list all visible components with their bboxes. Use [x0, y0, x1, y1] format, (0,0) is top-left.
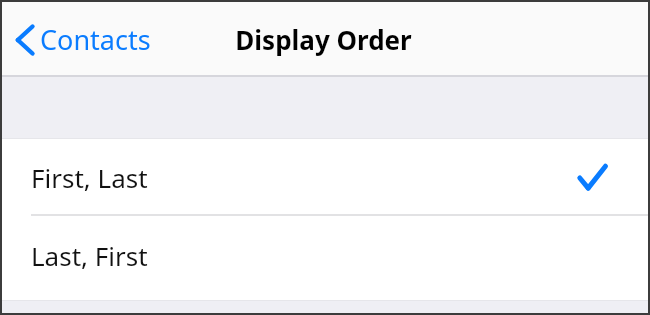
staticText: Last, First: [31, 238, 148, 273]
other: Selected: [579, 164, 606, 192]
button[interactable]: Contacts: [2, 2, 161, 77]
button[interactable]: First, Last: [2, 139, 648, 216]
button[interactable]: Last, First: [2, 216, 648, 300]
staticText: Display Order: [235, 22, 412, 57]
staticText: Contacts: [40, 21, 151, 58]
staticText: First, Last: [31, 160, 148, 195]
